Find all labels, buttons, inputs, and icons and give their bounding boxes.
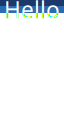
staticText: Hello <box>4 0 60 24</box>
